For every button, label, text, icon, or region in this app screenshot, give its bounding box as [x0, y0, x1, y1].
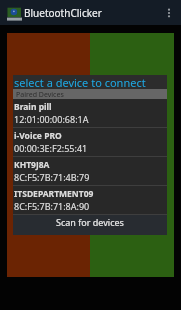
button[interactable] — [7, 33, 90, 277]
button[interactable]: i-Voice PRO — [13, 128, 167, 157]
staticText: Paired Devices — [16, 90, 64, 100]
staticText: 00:00:3E:F2:55:41 — [14, 142, 88, 154]
button[interactable]: Scan for devices — [13, 215, 167, 235]
staticText: select a device to connect — [14, 75, 146, 89]
staticText: 12:01:00:00:68:1A — [14, 113, 89, 125]
staticText: 8C:F5:7B:71:8A:90 — [14, 200, 90, 212]
button[interactable]: ITSDEPARTMENT09 — [13, 186, 167, 215]
button[interactable] — [90, 33, 174, 277]
button[interactable]: KHT9J8A — [13, 157, 167, 186]
staticText: i-Voice PRO — [14, 130, 62, 142]
button[interactable]: Brain pill — [13, 99, 167, 128]
staticText: KHT9J8A — [14, 159, 50, 171]
button[interactable]: More options — [156, 0, 181, 25]
staticText: Scan for devices — [56, 216, 124, 228]
staticText: Brain pill — [14, 101, 52, 113]
staticText: BluetoothClicker — [24, 6, 102, 20]
staticText: ITSDEPARTMENT09 — [14, 188, 94, 200]
staticText: 8C:F5:7B:71:4B:79 — [14, 171, 90, 183]
